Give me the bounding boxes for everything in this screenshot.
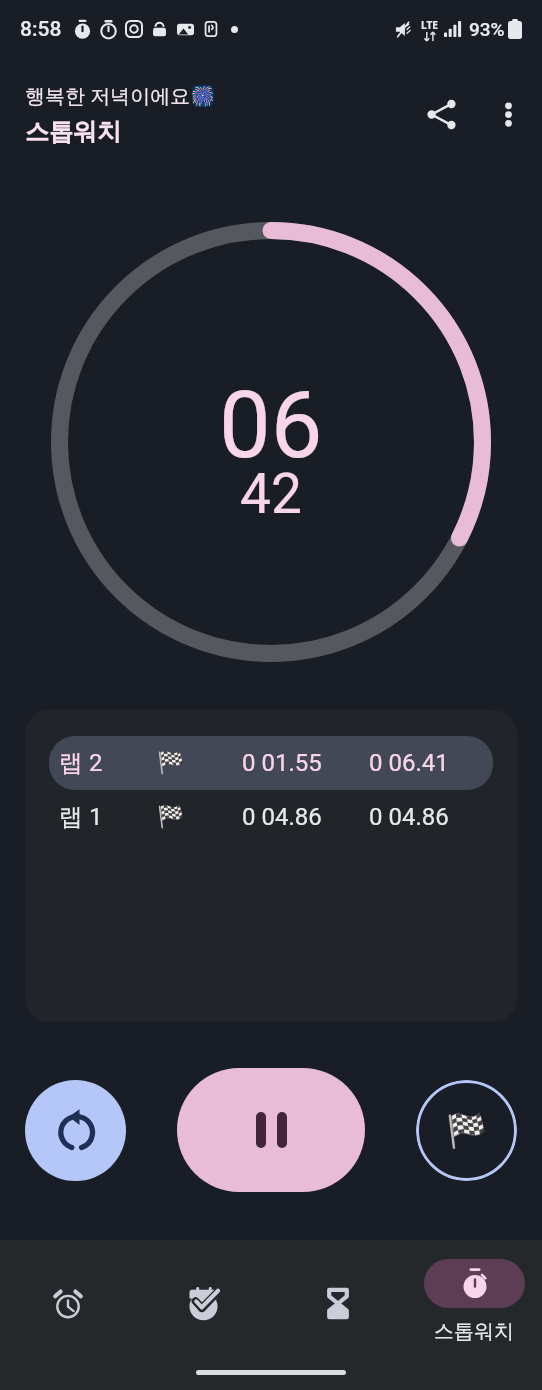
staticText: 🏁 xyxy=(446,1111,488,1150)
button[interactable]: More options xyxy=(484,90,532,138)
button[interactable]: World clock xyxy=(135,1240,270,1328)
button[interactable]: 랩 2 xyxy=(49,736,493,790)
staticText: LTE xyxy=(421,18,438,32)
button[interactable]: Lap xyxy=(416,1080,517,1181)
button[interactable]: Share xyxy=(413,86,469,142)
staticText: 🏁 xyxy=(157,804,185,830)
staticText: 🏁 xyxy=(157,750,185,776)
staticText: 0 06.41 xyxy=(369,749,449,777)
staticText: 0 04.86 xyxy=(369,803,449,831)
staticText: 0 01.55 xyxy=(242,749,322,777)
staticText: 스톱워치 xyxy=(25,117,121,147)
staticText: 스톱워치 xyxy=(434,1319,514,1344)
button[interactable]: Reset xyxy=(25,1080,126,1181)
staticText: 행복한 저녁이에요🎆 xyxy=(25,82,216,109)
button[interactable]: Stopwatch xyxy=(406,1240,542,1344)
staticText: 42 xyxy=(240,462,302,526)
staticText: 랩 1 xyxy=(59,802,103,832)
staticText: 0 04.86 xyxy=(242,803,322,831)
staticText: 06 xyxy=(219,372,323,480)
staticText: 랩 2 xyxy=(59,748,103,778)
staticText: 8:58 xyxy=(20,17,62,42)
staticText: 93% xyxy=(469,18,505,40)
button[interactable]: 랩 1 xyxy=(49,790,493,844)
button[interactable]: Pause xyxy=(177,1068,365,1192)
button[interactable]: Alarm xyxy=(0,1240,135,1328)
button[interactable]: Timer xyxy=(270,1240,406,1328)
